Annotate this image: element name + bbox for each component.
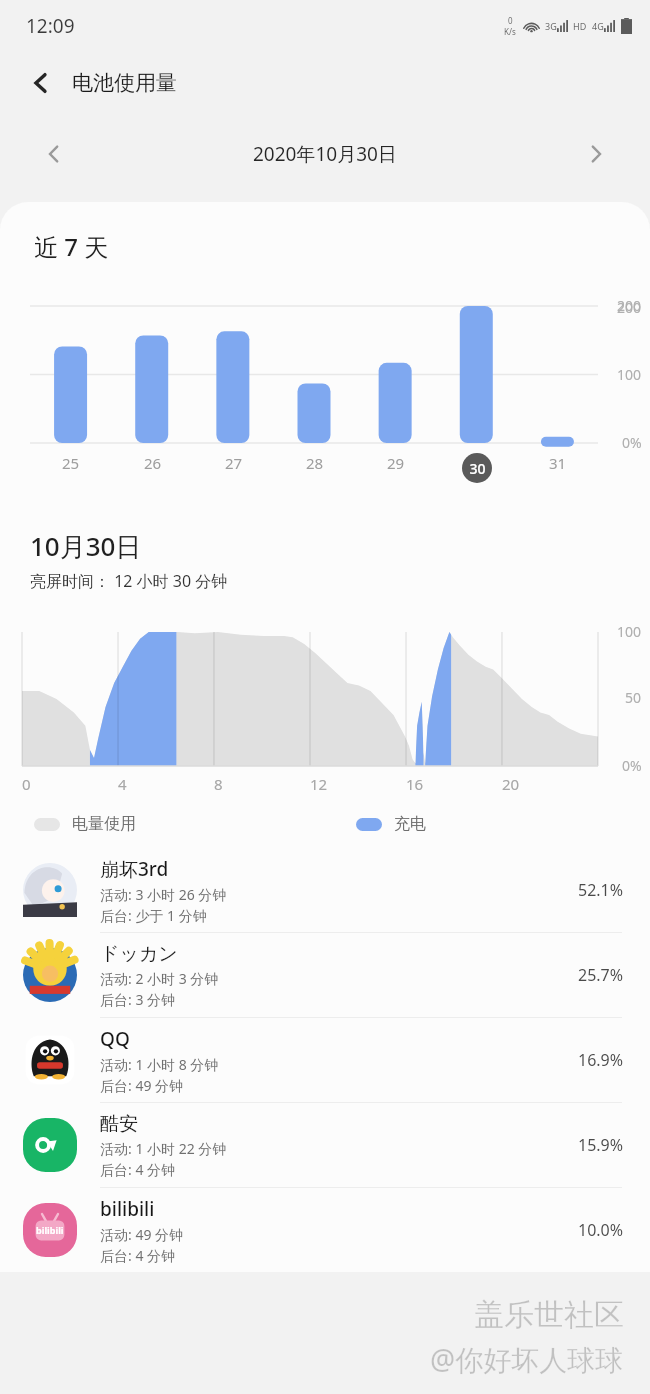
- staticText: 后台: 少于 1 分钟: [100, 906, 207, 925]
- staticText: bilibili: [36, 1224, 64, 1236]
- staticText: 50: [625, 688, 642, 707]
- button[interactable]: QQ: [0, 1018, 650, 1102]
- staticText: 后台: 4 分钟: [100, 1246, 176, 1265]
- staticText: 200: [617, 298, 642, 317]
- staticText: 200: [617, 296, 642, 315]
- staticText: 12:09: [26, 13, 75, 39]
- staticText: 12: [310, 774, 328, 794]
- staticText: 10.0%: [578, 1219, 624, 1241]
- staticText: 30: [469, 459, 486, 478]
- staticText: 20: [502, 774, 520, 794]
- staticText: 活动: 3 小时 26 分钟: [100, 885, 227, 904]
- staticText: 0%: [622, 756, 642, 775]
- staticText: 0: [22, 774, 31, 794]
- staticText: bilibili: [100, 1196, 155, 1222]
- staticText: 3G: [545, 20, 557, 32]
- staticText: 活动: 2 小时 3 分钟: [100, 969, 219, 988]
- staticText: 后台: 49 分钟: [100, 1076, 184, 1095]
- staticText: 活动: 49 分钟: [100, 1225, 184, 1244]
- staticText: 后台: 3 分钟: [100, 990, 176, 1009]
- staticText: 0: [508, 15, 513, 26]
- staticText: 近 7 天: [34, 230, 109, 263]
- button[interactable]: Previous day: [30, 130, 78, 178]
- staticText: 52.1%: [578, 879, 624, 901]
- staticText: 26: [144, 453, 162, 473]
- button[interactable]: 崩坏3rd: [0, 848, 650, 932]
- staticText: 100: [617, 365, 642, 384]
- staticText: K/s: [504, 26, 516, 37]
- button[interactable]: Back: [18, 60, 64, 106]
- staticText: 15.9%: [578, 1134, 624, 1156]
- staticText: 4: [118, 774, 127, 794]
- staticText: 电量使用: [72, 814, 136, 834]
- staticText: 25: [62, 453, 80, 473]
- staticText: 29: [387, 453, 405, 473]
- staticText: 16.9%: [578, 1049, 624, 1071]
- staticText: 10月30日: [30, 528, 142, 564]
- staticText: 电池使用量: [72, 70, 177, 96]
- staticText: @你好坏人球球: [430, 1340, 624, 1378]
- button[interactable]: 酷安: [0, 1103, 650, 1187]
- staticText: 4G: [592, 20, 604, 32]
- staticText: 崩坏3rd: [100, 856, 169, 882]
- staticText: 31: [549, 453, 567, 473]
- staticText: 25.7%: [578, 964, 624, 986]
- staticText: 8: [214, 774, 223, 794]
- staticText: 盖乐世社区: [474, 1296, 624, 1334]
- staticText: 亮屏时间： 12 小时 30 分钟: [30, 570, 228, 592]
- staticText: 27: [225, 453, 243, 473]
- staticText: QQ: [100, 1026, 130, 1052]
- staticText: 后台: 4 分钟: [100, 1160, 176, 1179]
- staticText: 活动: 1 小时 22 分钟: [100, 1139, 227, 1158]
- button[interactable]: ドッカン: [0, 933, 650, 1017]
- staticText: 28: [306, 453, 324, 473]
- staticText: 0%: [622, 433, 642, 452]
- button[interactable]: bilibili: [0, 1188, 650, 1272]
- staticText: ドッカン: [100, 942, 178, 966]
- staticText: 16: [406, 774, 424, 794]
- staticText: HD: [573, 20, 587, 32]
- staticText: 2020年10月30日: [253, 141, 397, 167]
- staticText: 100: [617, 622, 642, 641]
- button[interactable]: Next day: [572, 130, 620, 178]
- staticText: 酷安: [100, 1112, 138, 1136]
- staticText: 充电: [394, 814, 426, 834]
- staticText: 活动: 1 小时 8 分钟: [100, 1055, 219, 1074]
